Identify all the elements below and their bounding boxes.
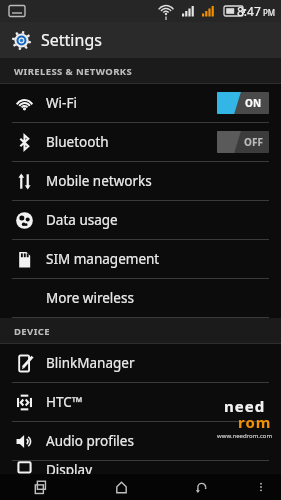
button[interactable]: Settings	[0, 22, 281, 58]
staticText: Wi-Fi	[46, 94, 77, 112]
staticText: PM	[263, 7, 276, 18]
staticText: Display	[46, 461, 93, 474]
staticText: rom	[238, 412, 272, 432]
button[interactable]: Audio profiles	[0, 422, 281, 460]
button[interactable]: OFF	[217, 131, 269, 153]
staticText: 8:47	[237, 3, 261, 19]
button[interactable]: BlinkManager	[0, 344, 281, 382]
button[interactable]: Data usage	[0, 201, 281, 239]
button[interactable]: SIM management	[0, 240, 281, 278]
button[interactable]: Display	[0, 461, 281, 474]
staticText: Audio profiles	[46, 432, 134, 450]
button[interactable]: Home	[81, 474, 161, 500]
staticText: BlinkManager	[46, 354, 135, 372]
staticText: WIRELESS & NETWORKS	[14, 65, 133, 78]
staticText: Settings	[41, 29, 102, 51]
staticText: HTC™	[46, 393, 83, 411]
button[interactable]: HTC™	[0, 383, 281, 421]
staticText: Bluetooth	[46, 133, 109, 151]
button[interactable]: Bluetooth	[0, 123, 281, 161]
button[interactable]: More wireless	[0, 279, 281, 317]
staticText: SIM management	[46, 250, 160, 268]
button[interactable]: More options	[241, 474, 281, 500]
staticText: Data usage	[46, 211, 118, 229]
button[interactable]: Recent apps	[0, 474, 81, 500]
staticText: www.needrom.com	[217, 432, 273, 440]
button[interactable]: ON	[217, 92, 269, 114]
staticText: DEVICE	[14, 325, 50, 338]
staticText: Mobile networks	[46, 172, 152, 190]
button[interactable]: Wi-Fi	[0, 84, 281, 122]
staticText: need	[224, 396, 266, 416]
staticText: ON	[245, 96, 262, 110]
staticText: More wireless	[46, 289, 134, 307]
button[interactable]: Back	[161, 474, 241, 500]
staticText: OFF	[244, 135, 263, 149]
button[interactable]: Mobile networks	[0, 162, 281, 200]
